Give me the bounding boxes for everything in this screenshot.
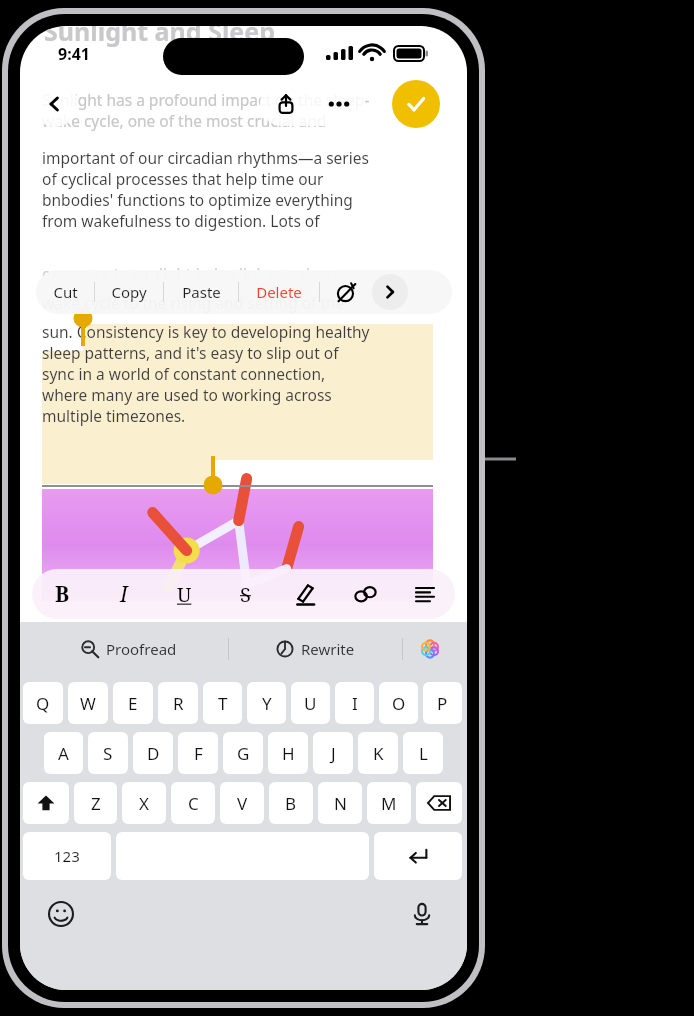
button[interactable]: Done: [392, 80, 440, 128]
staticText: N: [334, 792, 347, 815]
staticText: wake cycle, one of the most crucial and: [42, 110, 327, 131]
staticText: W: [80, 692, 96, 715]
button[interactable]: Apple Intelligence: [403, 622, 457, 676]
staticText: bnbodies' functions to optimize everythi…: [42, 189, 353, 210]
button[interactable]: Backspace: [416, 782, 462, 824]
button[interactable]: R: [158, 682, 198, 724]
button[interactable]: P: [423, 682, 462, 724]
staticText: Z: [91, 792, 101, 815]
button[interactable]: L: [403, 732, 443, 774]
staticText: Proofread: [106, 639, 177, 659]
staticText: A: [58, 742, 69, 765]
button[interactable]: Back: [32, 81, 78, 127]
staticText: J: [331, 742, 336, 765]
staticText: Q: [36, 692, 50, 715]
staticText: H: [282, 742, 295, 765]
staticText: sleep patterns, and it's easy to slip ou…: [42, 342, 339, 363]
button[interactable]: Z: [74, 782, 117, 824]
staticText: Rewrite: [301, 639, 355, 659]
button[interactable]: J: [313, 732, 353, 774]
button[interactable]: H: [268, 732, 308, 774]
button[interactable]: K: [358, 732, 398, 774]
button[interactable]: Italic: [93, 569, 154, 619]
staticText: M: [381, 792, 397, 815]
button[interactable]: S: [88, 732, 128, 774]
staticText: sun. Consistency is key to developing he…: [42, 321, 370, 342]
button[interactable]: T: [203, 682, 242, 724]
button[interactable]: M: [367, 782, 411, 824]
staticText: exposure to sunlight helps link our slee…: [42, 263, 342, 284]
button[interactable]: F: [178, 732, 218, 774]
button[interactable]: Link: [335, 569, 395, 619]
button[interactable]: X: [122, 782, 166, 824]
staticText: Paste: [182, 282, 221, 302]
button[interactable]: D: [133, 732, 173, 774]
button[interactable]: A: [44, 732, 83, 774]
button[interactable]: Q: [23, 682, 63, 724]
staticText: R: [173, 692, 184, 715]
staticText: B: [55, 580, 70, 609]
button[interactable]: Dictate: [405, 897, 439, 931]
button[interactable]: Emoji: [44, 897, 78, 931]
staticText: V: [237, 792, 248, 815]
staticText: important of our circadian rhythms—a ser…: [42, 147, 369, 168]
staticText: E: [128, 692, 138, 715]
button[interactable]: Share: [260, 82, 312, 126]
button[interactable]: N: [318, 782, 362, 824]
button[interactable]: Delete: [239, 270, 319, 314]
button[interactable]: Rewrite: [229, 622, 402, 676]
button[interactable]: W: [68, 682, 108, 724]
staticText: Sunlight and Sleep: [44, 26, 276, 48]
button[interactable]: C: [171, 782, 215, 824]
button[interactable]: Writing Tools: [320, 270, 372, 314]
staticText: 123: [54, 846, 80, 866]
button[interactable]: More options: [312, 82, 365, 126]
button[interactable]: Proofread: [30, 622, 228, 676]
button[interactable]: Bold: [32, 569, 93, 619]
button[interactable]: U: [291, 682, 330, 724]
staticText: G: [237, 742, 250, 765]
staticText: Sunlight has a profound impact on the sl…: [42, 89, 370, 110]
staticText: 9:41: [58, 43, 90, 65]
staticText: wake cycle to the rising and setting of …: [42, 292, 345, 313]
button[interactable]: 123: [23, 832, 111, 880]
button[interactable]: Highlight: [275, 569, 335, 619]
staticText: K: [373, 742, 384, 765]
staticText: from wakefulness to digestion. Lots of: [42, 210, 320, 231]
staticText: sync in a world of constant connection,: [42, 363, 326, 384]
button[interactable]: More: [372, 274, 408, 310]
button[interactable]: V: [220, 782, 264, 824]
staticText: D: [147, 742, 160, 765]
staticText: Y: [262, 692, 272, 715]
staticText: Delete: [256, 282, 302, 302]
button[interactable]: Underline: [154, 569, 215, 619]
staticText: P: [437, 692, 448, 715]
button[interactable]: Formatting: [395, 569, 455, 619]
staticText: X: [139, 792, 149, 815]
button[interactable]: O: [379, 682, 418, 724]
button[interactable]: G: [223, 732, 263, 774]
staticText: of cyclical processes that help time our: [42, 168, 324, 189]
button[interactable]: E: [113, 682, 153, 724]
button[interactable]: Paste: [164, 270, 238, 314]
staticText: S: [240, 581, 251, 608]
button[interactable]: Cut: [36, 270, 94, 314]
button[interactable]: Shift: [23, 782, 69, 824]
staticText: where many are used to working across: [42, 384, 332, 405]
staticText: O: [392, 692, 406, 715]
staticText: F: [194, 742, 203, 765]
staticText: multiple timezones.: [42, 405, 186, 426]
staticText: I: [120, 580, 128, 609]
staticText: Cut: [53, 282, 78, 302]
button[interactable]: Strikethrough: [215, 569, 275, 619]
button[interactable]: Return: [374, 832, 462, 880]
button[interactable]: Copy: [95, 270, 163, 314]
staticText: B: [285, 792, 297, 815]
button[interactable]: B: [269, 782, 313, 824]
button[interactable]: Y: [247, 682, 286, 724]
staticText: I: [352, 692, 358, 715]
button[interactable]: I: [335, 682, 374, 724]
staticText: U: [304, 692, 317, 715]
staticText: U: [177, 581, 192, 608]
